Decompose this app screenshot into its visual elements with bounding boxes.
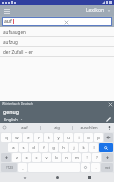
- staticText: i: [78, 135, 80, 141]
- staticText: s: [22, 145, 25, 151]
- staticText: n: [65, 155, 68, 161]
- button[interactable]: !: [82, 153, 91, 162]
- button[interactable]: x: [22, 153, 31, 162]
- staticText: o: [87, 135, 90, 141]
- staticText: e: [27, 135, 30, 141]
- staticText: aufzug: [3, 39, 18, 45]
- staticText: r: [38, 135, 40, 141]
- button[interactable]: a: [8, 143, 18, 152]
- staticText: f: [43, 145, 45, 151]
- staticText: b: [55, 155, 58, 161]
- button[interactable]: Close panel: [108, 102, 112, 106]
- staticText: m: [75, 155, 79, 161]
- button[interactable]: l: [89, 143, 98, 152]
- button[interactable]: u: [64, 133, 73, 142]
- staticText: ?: [96, 155, 98, 161]
- staticText: z: [16, 155, 18, 161]
- button[interactable]: Emoji: [0, 123, 9, 132]
- button[interactable]: t: [44, 133, 53, 142]
- button[interactable]: ,: [18, 163, 27, 172]
- button[interactable]: d: [29, 143, 38, 152]
- button[interactable]: Hide keyboard: [18, 173, 32, 182]
- button[interactable]: h: [59, 143, 68, 152]
- staticText: nxt: [105, 166, 110, 170]
- staticText: Wörterbuch Deutsch: [2, 102, 33, 106]
- button[interactable]: c: [32, 153, 41, 162]
- staticText: g: [52, 145, 55, 151]
- button[interactable]: m: [72, 153, 81, 162]
- button[interactable]: English: [4, 117, 23, 122]
- button[interactable]: Shift right: [102, 153, 113, 162]
- staticText: v: [45, 155, 48, 161]
- button[interactable]: j: [69, 143, 78, 152]
- button[interactable]: Recent apps: [82, 173, 96, 182]
- staticText: zig: [54, 125, 60, 131]
- button[interactable]: der Zufall ~ er: [0, 47, 114, 57]
- button[interactable]: ?: [92, 153, 101, 162]
- button[interactable]: Edit: [105, 116, 111, 122]
- button[interactable]: Lexikon: [86, 7, 111, 14]
- staticText: t: [48, 135, 50, 141]
- button[interactable]: w: [12, 133, 22, 142]
- button[interactable]: q: [1, 133, 11, 142]
- button[interactable]: i: [74, 133, 83, 142]
- button[interactable]: Voice input: [104, 123, 114, 132]
- staticText: auf: [4, 18, 12, 25]
- button[interactable]: auf: [2, 17, 112, 26]
- staticText: q: [5, 135, 8, 141]
- staticText: English: [4, 117, 18, 122]
- staticText: der Zufall ~ er: [3, 49, 34, 55]
- staticText: k: [82, 145, 85, 151]
- staticText: ?123: [6, 166, 13, 170]
- staticText: zuschlen: [80, 125, 98, 131]
- button[interactable]: Search: [99, 143, 113, 152]
- button[interactable]: p: [94, 133, 103, 142]
- button[interactable]: k: [79, 143, 88, 152]
- button[interactable]: Home: [50, 173, 64, 182]
- button[interactable]: r: [34, 133, 43, 142]
- button[interactable]: g: [49, 143, 58, 152]
- staticText: a: [12, 145, 15, 151]
- staticText: x: [25, 155, 28, 161]
- button[interactable]: ?123: [1, 163, 17, 172]
- button[interactable]: Shift: [1, 153, 11, 162]
- button[interactable]: auf: [9, 123, 40, 132]
- staticText: auf: [21, 125, 28, 131]
- button[interactable]: y: [54, 133, 63, 142]
- staticText: h: [62, 145, 65, 151]
- staticText: genug: [3, 108, 19, 115]
- staticText: j: [73, 145, 75, 151]
- button[interactable]: Backspace: [104, 133, 113, 142]
- staticText: p: [97, 135, 100, 141]
- button[interactable]: n: [62, 153, 71, 162]
- staticText: .: [95, 165, 97, 171]
- staticText: d: [32, 145, 35, 151]
- button[interactable]: Clear search: [63, 19, 69, 25]
- staticText: w: [15, 135, 19, 141]
- button[interactable]: s: [19, 143, 28, 152]
- button[interactable]: f: [39, 143, 48, 152]
- button[interactable]: b: [52, 153, 61, 162]
- button[interactable]: Emoji key: [81, 163, 90, 172]
- button[interactable]: Open navigation menu: [3, 7, 11, 15]
- staticText: ,: [22, 165, 24, 171]
- button[interactable]: e: [23, 133, 33, 142]
- button[interactable]: .: [91, 163, 100, 172]
- staticText: y: [57, 135, 60, 141]
- button[interactable]: aufzug: [0, 37, 114, 47]
- staticText: l: [93, 145, 95, 151]
- button[interactable]: aufsaugen: [0, 27, 114, 37]
- staticText: c: [35, 155, 38, 161]
- button[interactable]: o: [84, 133, 93, 142]
- staticText: !: [86, 155, 88, 161]
- button[interactable]: zig: [41, 123, 72, 132]
- staticText: Lexikon: [86, 7, 105, 14]
- button[interactable]: v: [42, 153, 51, 162]
- staticText: aufsaugen: [3, 29, 26, 35]
- button[interactable]: z: [12, 153, 21, 162]
- staticText: u: [67, 135, 70, 141]
- button[interactable]: nxt: [101, 163, 113, 172]
- button[interactable]: zuschlen: [73, 123, 104, 132]
